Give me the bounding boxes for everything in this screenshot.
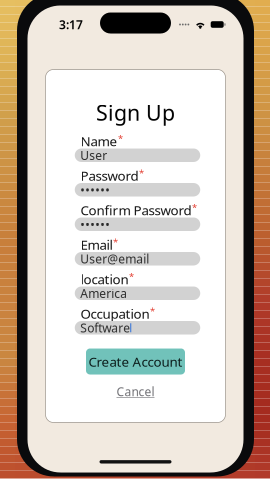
staticText: 3:17 [59, 16, 83, 32]
button[interactable]: Create Account [86, 348, 185, 374]
staticText: •••••• [80, 216, 110, 232]
staticText: •••••• [80, 182, 110, 198]
staticText: America [80, 285, 127, 301]
staticText: Sign Up [96, 98, 175, 127]
staticText: Email [80, 236, 112, 253]
staticText: * [113, 236, 118, 248]
staticText: * [129, 270, 134, 282]
staticText: Cancel [116, 383, 154, 399]
staticText: Software [80, 320, 130, 336]
staticText: * [139, 167, 144, 179]
staticText: * [192, 201, 197, 213]
staticText: Confirm Password [80, 201, 191, 219]
staticText: * [118, 132, 123, 144]
staticText: location [80, 270, 128, 288]
staticText: Password [80, 167, 138, 184]
staticText: Occupation [80, 305, 149, 322]
staticText: * [150, 305, 155, 317]
staticText: Create Account [88, 353, 182, 370]
staticText: User@email [80, 251, 149, 267]
staticText: Name [80, 132, 117, 150]
button[interactable]: Cancel [116, 385, 154, 397]
staticText: User [80, 147, 107, 163]
